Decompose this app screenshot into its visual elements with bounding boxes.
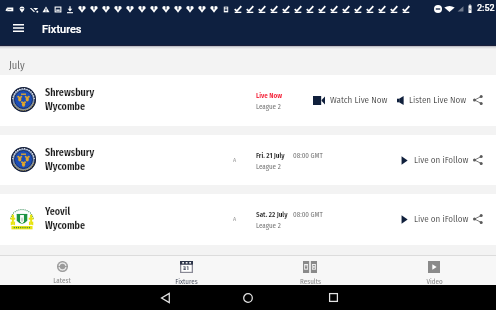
staticText: League 2	[256, 102, 281, 110]
staticText: Sat. 22 July	[256, 210, 288, 218]
staticText: Watch Live Now	[330, 95, 388, 106]
button[interactable]: Live on iFollow	[401, 155, 469, 166]
staticText: Live on iFollow	[414, 214, 469, 225]
staticText: Live Now	[256, 91, 283, 99]
button[interactable]: Watch Live Now	[313, 95, 388, 106]
staticText: Wycombe	[45, 101, 86, 113]
button[interactable]: Back	[154, 290, 176, 305]
staticText: 08:00 GMT	[293, 151, 323, 159]
button[interactable]: Yeovil	[0, 194, 496, 245]
staticText: Shrewsbury	[45, 147, 95, 159]
staticText: Latest	[53, 276, 71, 284]
button[interactable]: Shrewsbury	[0, 135, 496, 185]
staticText: Video	[426, 277, 443, 285]
button[interactable]: Share	[469, 210, 487, 228]
staticText: 08:00 GMT	[293, 210, 323, 218]
staticText: League 2	[256, 221, 281, 229]
staticText: July	[9, 59, 25, 72]
button[interactable]: Shrewsbury	[0, 75, 496, 126]
staticText: Results	[300, 277, 321, 285]
staticText: Shrewsbury	[45, 87, 95, 99]
staticText: Yeovil	[45, 206, 71, 218]
button[interactable]: Fixtures	[124, 256, 248, 285]
staticText: Wycombe	[45, 220, 86, 232]
button[interactable]: Share	[469, 151, 487, 169]
button[interactable]: Results	[248, 256, 372, 285]
staticText: Live on iFollow	[414, 155, 469, 166]
button[interactable]: Home	[237, 290, 259, 305]
button[interactable]: Open navigation menu	[5, 15, 31, 41]
staticText: A	[233, 215, 237, 222]
staticText: Fixtures	[175, 277, 198, 285]
staticText: 2:52	[477, 3, 495, 14]
button[interactable]: Share	[469, 91, 487, 109]
staticText: Listen Live Now	[409, 95, 467, 106]
staticText: League 2	[256, 162, 281, 170]
staticText: Fri. 21 July	[256, 151, 285, 159]
button[interactable]: Live on iFollow	[401, 214, 469, 225]
button[interactable]: Video	[372, 256, 496, 285]
staticText: A	[233, 156, 237, 163]
staticText: Fixtures	[42, 23, 82, 36]
button[interactable]: Latest	[0, 256, 124, 285]
button[interactable]: Recent apps	[322, 290, 344, 305]
staticText: Wycombe	[45, 161, 86, 173]
button[interactable]: Listen Live Now	[397, 95, 467, 106]
